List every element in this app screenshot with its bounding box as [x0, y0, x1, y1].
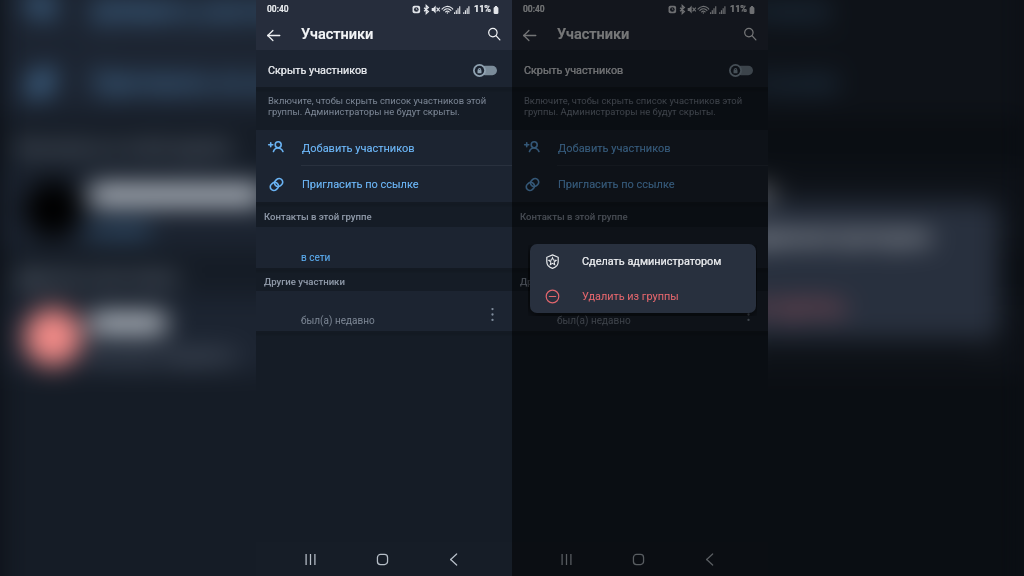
- staticText: Включите, чтобы скрыть список участников…: [268, 95, 502, 117]
- button[interactable]: Добавить участников: [512, 0, 1024, 46]
- button[interactable]: Добавить участников: [256, 130, 512, 166]
- button[interactable]: Пригласить по ссылке: [0, 46, 512, 118]
- staticText: Участники: [557, 26, 630, 43]
- button[interactable]: More options: [450, 320, 494, 364]
- button[interactable]: в сети: [512, 227, 768, 268]
- staticText: Добавить участников: [604, 0, 830, 24]
- staticText: Сделать администратором: [582, 255, 722, 268]
- button[interactable]: Back: [436, 542, 470, 576]
- staticText: Пригласить по ссылке: [558, 178, 675, 191]
- button[interactable]: был(а) недавно: [512, 291, 768, 331]
- button[interactable]: был(а) недавно: [256, 291, 512, 331]
- staticText: 11%: [474, 4, 491, 15]
- staticText: Другие участники: [264, 276, 345, 287]
- staticText: Включите, чтобы скрыть список участников…: [524, 95, 758, 117]
- button[interactable]: Удалить из группы: [548, 272, 1000, 340]
- button[interactable]: в сети: [512, 168, 1024, 250]
- button[interactable]: Удалить из группы: [530, 279, 756, 313]
- staticText: Контакты в этой группе: [528, 136, 744, 158]
- staticText: Другие участники: [528, 266, 690, 288]
- button[interactable]: в сети: [256, 227, 512, 268]
- button[interactable]: Пригласить по ссылке: [256, 166, 512, 202]
- button[interactable]: Скрыть участников: [512, 50, 768, 87]
- button[interactable]: Back: [260, 22, 286, 48]
- button[interactable]: был(а) недавно: [512, 296, 1024, 376]
- staticText: 11%: [730, 4, 747, 15]
- button[interactable]: Hide members toggle: [473, 64, 497, 77]
- staticText: Пригласить по ссылке: [92, 70, 326, 96]
- staticText: Добавить участников: [558, 142, 671, 155]
- staticText: Добавить участников: [302, 142, 415, 155]
- button[interactable]: Пригласить по ссылке: [512, 46, 1024, 118]
- button[interactable]: Back: [692, 542, 726, 576]
- button[interactable]: More options: [481, 303, 503, 325]
- staticText: Скрыть участников: [268, 64, 368, 77]
- staticText: Другие участники: [16, 266, 178, 288]
- button[interactable]: Back: [516, 22, 542, 48]
- button[interactable]: Скрыть участников: [256, 50, 512, 87]
- button[interactable]: More options: [962, 320, 1006, 364]
- button[interactable]: Home: [621, 542, 655, 576]
- staticText: 00:40: [523, 4, 545, 14]
- button[interactable]: Сделать администратором: [548, 202, 1000, 272]
- button[interactable]: Search: [737, 21, 763, 47]
- button[interactable]: Hide members toggle: [729, 64, 753, 77]
- staticText: Скрыть участников: [524, 64, 624, 77]
- button[interactable]: Сделать администратором: [530, 244, 756, 279]
- button[interactable]: More options: [737, 303, 759, 325]
- button[interactable]: Home: [365, 542, 399, 576]
- staticText: Контакты в этой группе: [520, 211, 628, 222]
- button[interactable]: Пригласить по ссылке: [512, 166, 768, 202]
- button[interactable]: в сети: [0, 168, 512, 250]
- staticText: был(а) недавно: [90, 344, 238, 368]
- staticText: в сети: [301, 252, 331, 264]
- staticText: Пригласить по ссылке: [302, 178, 419, 191]
- staticText: был(а) недавно: [301, 315, 375, 327]
- staticText: Другие участники: [520, 276, 601, 287]
- button[interactable]: Recents: [549, 542, 583, 576]
- button[interactable]: Search: [481, 21, 507, 47]
- staticText: в сети: [90, 218, 150, 242]
- staticText: был(а) недавно: [557, 315, 631, 327]
- staticText: Добавить участников: [92, 0, 318, 24]
- staticText: Пригласить по ссылке: [604, 70, 838, 96]
- button[interactable]: Recents: [293, 542, 327, 576]
- button[interactable]: Добавить участников: [0, 0, 512, 46]
- staticText: Контакты в этой группе: [264, 211, 372, 222]
- button[interactable]: Добавить участников: [512, 130, 768, 166]
- staticText: 00:40: [267, 4, 289, 14]
- button[interactable]: был(а) недавно: [0, 296, 512, 376]
- staticText: Удалить из группы: [582, 290, 679, 303]
- staticText: Удалить из группы: [652, 294, 846, 320]
- staticText: Участники: [301, 26, 374, 43]
- staticText: в сети: [557, 252, 587, 264]
- staticText: в сети: [602, 218, 662, 242]
- staticText: Сделать администратором: [652, 224, 932, 250]
